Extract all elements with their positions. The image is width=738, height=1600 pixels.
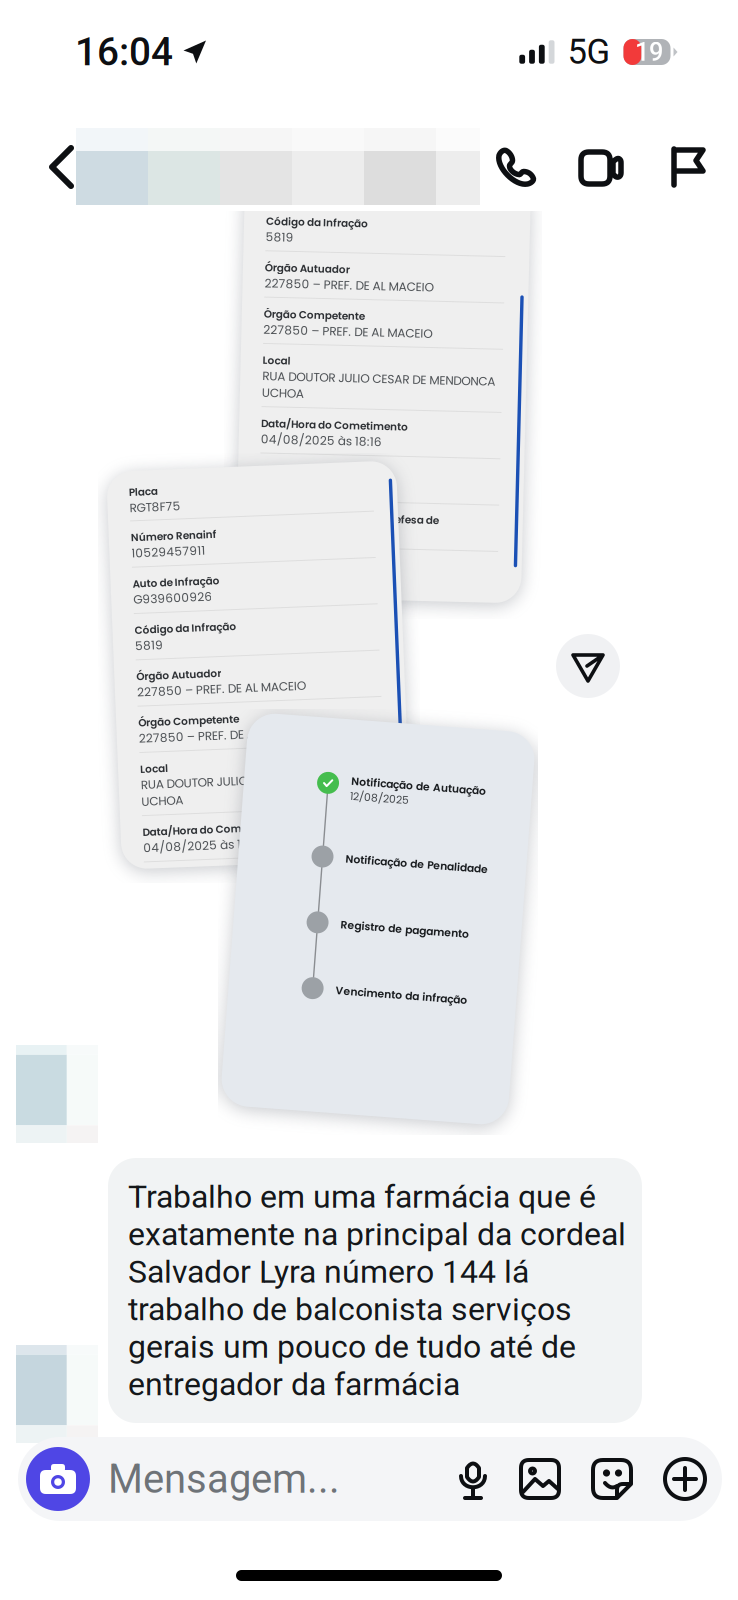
button[interactable]: Audio call (486, 137, 544, 197)
staticText: 19 (635, 37, 663, 67)
staticText: Órgão Competente (262, 309, 363, 324)
staticText: 227850 – PREF. DE AL MACEIO (262, 278, 431, 294)
staticText: Registro de pagamento (341, 920, 470, 935)
staticText: 227850 – PREF. DE AL MACEIO (136, 725, 305, 742)
button[interactable]: Voice message (442, 1437, 504, 1521)
button[interactable]: Camera (26, 1437, 90, 1521)
staticText: Vencimento da infração (341, 986, 473, 1001)
button[interactable]: More (648, 1437, 722, 1521)
staticText: Órgão Competente (136, 711, 237, 725)
staticText: 04/08/2025 às 18:16 (262, 434, 383, 450)
staticText: 10529457911 (136, 540, 210, 557)
button[interactable]: Back (34, 137, 90, 197)
button[interactable]: Report (662, 137, 714, 197)
staticText: Data/Hora do Cometimento (262, 419, 409, 434)
staticText: Data/Hora do Cometimento (136, 820, 283, 835)
staticText: Órgão Autuador (136, 664, 221, 679)
staticText: Prazo para Interposição (136, 867, 261, 881)
staticText: RUA DOUTOR JULIO CESAR DE MENDONCA (262, 370, 495, 387)
staticText: RUA DOUTOR JULIO CESAR DE MENDONCA (136, 772, 369, 788)
staticText: Código da Infração (262, 217, 364, 231)
button[interactable]: Video call (572, 138, 630, 198)
button[interactable]: Photos (504, 1437, 576, 1521)
staticText: UCHOA (136, 788, 178, 805)
staticText: Órgão Autuador (262, 263, 347, 278)
staticText: Local (262, 356, 290, 370)
staticText: UCHOA (262, 387, 304, 404)
staticText: Placa (136, 480, 165, 495)
staticText: Condutor Infrator (262, 558, 355, 573)
staticText: Local (136, 757, 164, 772)
staticText: Notificação de Autuação (341, 776, 476, 791)
staticText: 227850 – PREF. DE AL MACEIO (136, 679, 305, 696)
staticText: 5819 (262, 231, 290, 248)
button[interactable]: Stickers (576, 1437, 648, 1521)
staticText: Mensagem... (108, 1456, 340, 1502)
staticText: Número Renainf (136, 525, 222, 540)
button[interactable]: Send (556, 634, 620, 698)
staticText: G939600926 (136, 586, 215, 603)
staticText: 5819 (136, 633, 164, 649)
staticText: 04/08/2025 às 18:16 (136, 835, 257, 852)
staticText: Trabalho em uma farmácia que é exatament… (128, 1178, 626, 1403)
staticText: Código da Infração (136, 618, 238, 633)
staticText: 5G (567, 32, 610, 72)
staticText: Notificação de Penalidade (341, 854, 484, 869)
staticText: Prazo para Indicação da Defesa de (262, 512, 442, 526)
staticText: 227850 – PREF. DE AL MACEIO (262, 324, 431, 341)
staticText: RGT8F75 (136, 495, 187, 511)
staticText: Auto de Infração (136, 572, 223, 586)
staticText: 12/08/2025 (341, 791, 400, 806)
staticText: G939600926 (262, 186, 341, 203)
staticText: 16:04 (75, 29, 173, 75)
